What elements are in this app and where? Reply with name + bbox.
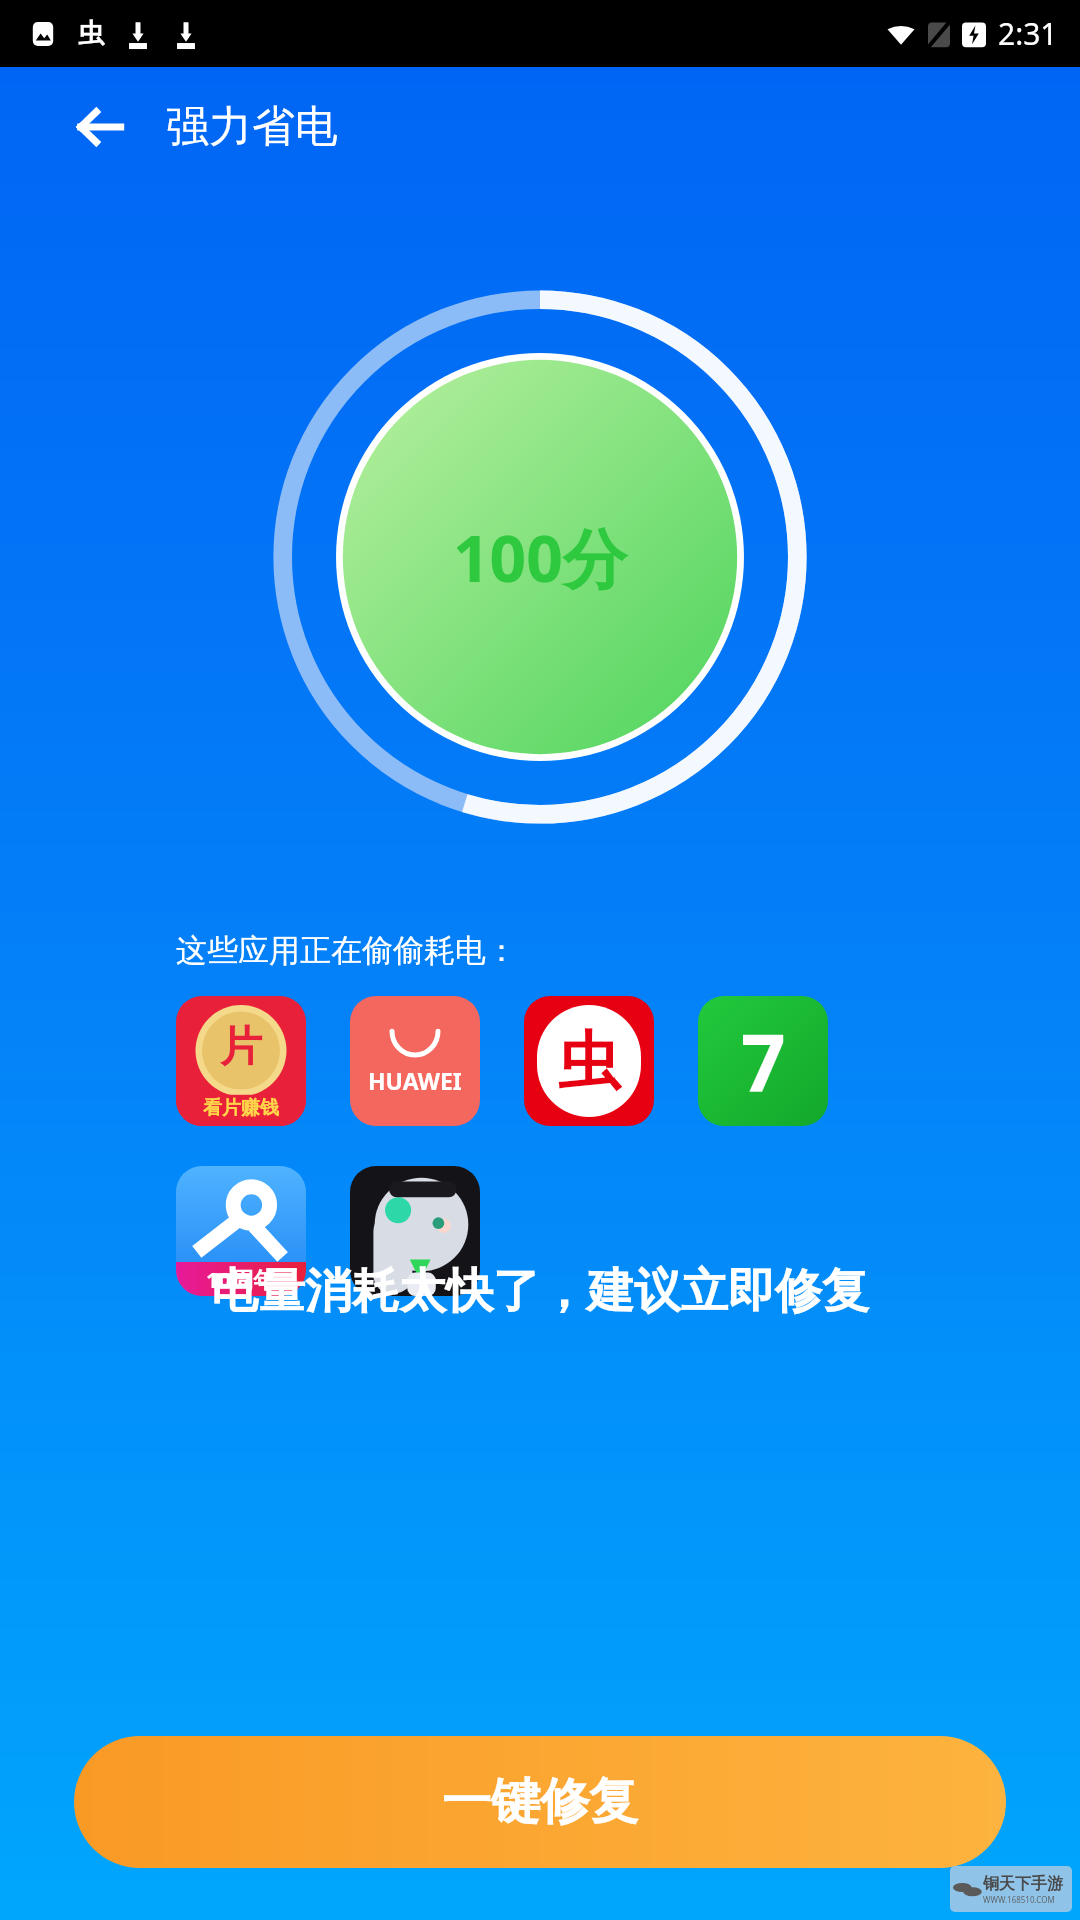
staticText: 一键修复 — [442, 1771, 638, 1833]
staticText: 片 — [220, 1021, 262, 1074]
button[interactable]: Back — [62, 89, 138, 165]
staticText: 铜天下手游 — [983, 1874, 1063, 1894]
button[interactable]: 7 — [698, 996, 828, 1126]
staticText: 强力省电 — [166, 100, 338, 154]
staticText: 10周年 — [206, 1264, 276, 1294]
staticText: HUAWEI — [368, 1065, 462, 1096]
staticText: 虫 — [78, 17, 104, 50]
button[interactable]: HUAWEI AppGallery — [350, 996, 480, 1126]
button[interactable]: 一键修复 — [74, 1736, 1006, 1868]
button[interactable]: 虫 — [524, 996, 654, 1126]
staticText: WWW.168510.COM — [983, 1894, 1055, 1905]
staticText: 7 — [741, 1008, 786, 1114]
button[interactable]: 看片赚钱 — [176, 996, 306, 1126]
staticText: 虫 — [558, 1022, 620, 1100]
staticText: 电量消耗太快了，建议立即修复 — [0, 1262, 1080, 1321]
staticText: 2:31 — [998, 13, 1058, 54]
staticText: 这些应用正在偷偷耗电： — [176, 931, 517, 970]
staticText: 100分 — [453, 514, 627, 601]
button[interactable]: 修复工具 — [176, 1166, 306, 1296]
staticText: 看片赚钱 — [203, 1096, 279, 1120]
button[interactable]: 游戏 — [350, 1166, 480, 1296]
